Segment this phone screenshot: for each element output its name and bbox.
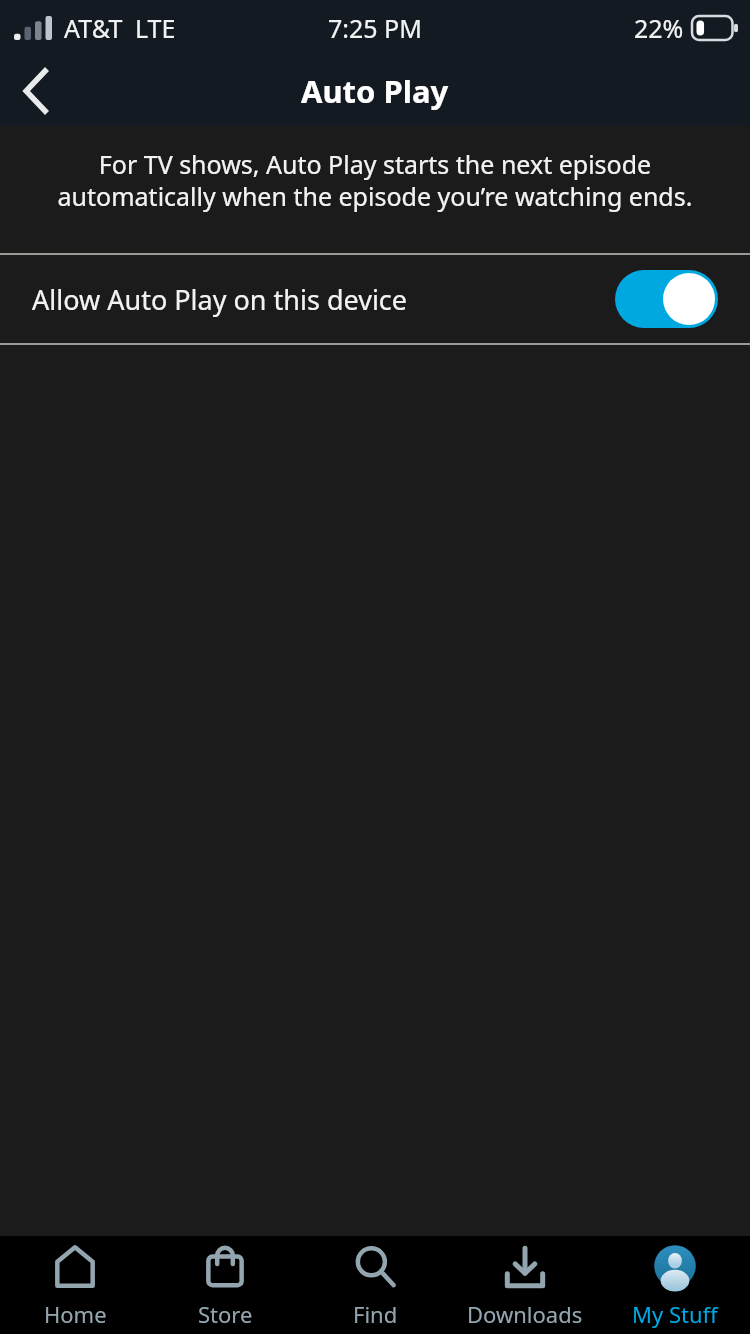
staticText: Allow Auto Play on this device: [32, 281, 615, 318]
button[interactable]: Find: [300, 1236, 450, 1334]
staticText: Find: [353, 1299, 398, 1329]
staticText: Auto Play: [301, 70, 449, 112]
button[interactable]: Back: [0, 55, 72, 126]
staticText: LTE: [135, 11, 176, 45]
button[interactable]: My Stuff: [600, 1236, 750, 1334]
button[interactable]: Downloads: [450, 1236, 600, 1334]
staticText: AT&T: [64, 11, 123, 45]
staticText: My Stuff: [632, 1299, 718, 1329]
staticText: For TV shows, Auto Play starts the next …: [16, 147, 734, 213]
staticText: Home: [44, 1299, 107, 1329]
staticText: 7:25 PM: [328, 11, 422, 45]
button[interactable]: Home: [0, 1236, 150, 1334]
button[interactable]: Allow Auto Play toggle, on: [615, 270, 718, 328]
staticText: Downloads: [467, 1299, 583, 1329]
button[interactable]: Store: [150, 1236, 300, 1334]
staticText: Store: [198, 1299, 253, 1329]
button[interactable]: Allow Auto Play on this device: [0, 255, 750, 343]
staticText: 22%: [634, 11, 684, 45]
